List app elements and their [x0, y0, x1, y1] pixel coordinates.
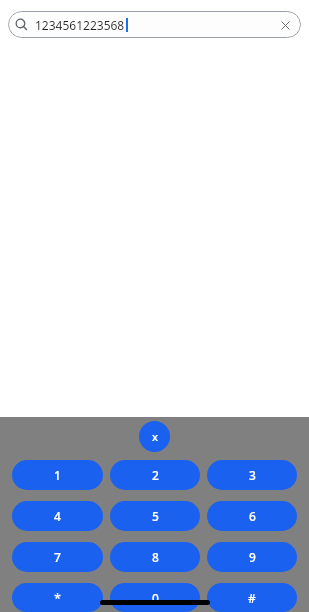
button[interactable]: 1 — [12, 460, 103, 490]
staticText: 2 — [152, 467, 159, 483]
button[interactable]: 7 — [12, 542, 103, 572]
staticText: 5 — [152, 508, 159, 524]
button[interactable]: 2 — [110, 460, 200, 490]
button[interactable]: 3 — [207, 460, 297, 490]
staticText: 8 — [152, 549, 159, 565]
button[interactable]: 8 — [110, 542, 200, 572]
button[interactable]: * — [12, 583, 103, 612]
staticText: 6 — [249, 508, 256, 524]
staticText: 4 — [54, 508, 61, 524]
button[interactable]: 0 — [110, 583, 200, 612]
button[interactable]: 5 — [110, 501, 200, 531]
staticText: 1234561223568 — [35, 17, 125, 33]
button[interactable]: 9 — [207, 542, 297, 572]
staticText: * — [54, 590, 61, 606]
staticText: 9 — [249, 549, 256, 565]
staticText: x — [152, 429, 158, 444]
button[interactable]: Close keypad — [139, 421, 170, 452]
staticText: 1 — [54, 467, 61, 483]
button[interactable]: 4 — [12, 501, 103, 531]
staticText: 0 — [152, 590, 159, 606]
staticText: 3 — [249, 467, 256, 483]
staticText: 7 — [54, 549, 61, 565]
button[interactable]: 6 — [207, 501, 297, 531]
staticText: # — [248, 590, 256, 606]
button[interactable]: Clear search — [272, 12, 298, 38]
button[interactable]: 1234561223568 — [8, 11, 301, 38]
button[interactable]: # — [207, 583, 297, 612]
